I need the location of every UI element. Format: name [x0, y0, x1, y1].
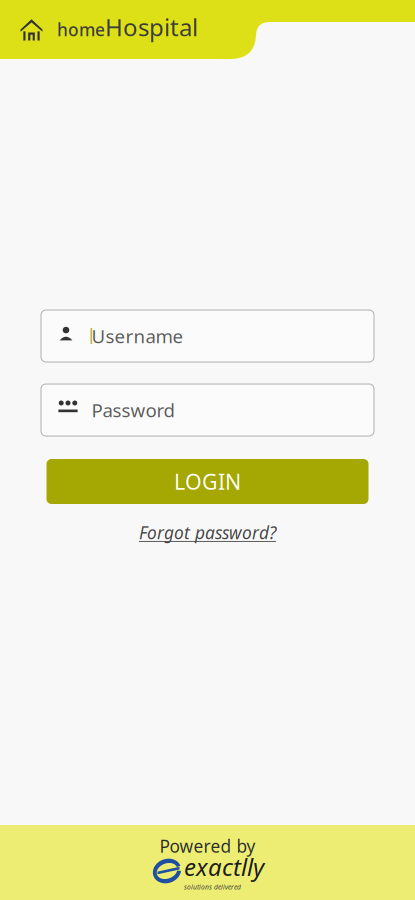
button[interactable]: LOGIN: [46, 459, 368, 504]
button[interactable]: Forgot password?: [139, 521, 276, 544]
staticText: solutions delivered: [184, 882, 241, 891]
staticText: LOGIN: [174, 467, 241, 496]
staticText: Password: [91, 398, 174, 422]
staticText: Hospital: [105, 11, 198, 43]
staticText: exactlly: [184, 851, 264, 882]
button[interactable]: Username: [41, 310, 374, 362]
button[interactable]: Password: [41, 384, 374, 436]
staticText: Forgot password?: [139, 521, 276, 544]
staticText: home: [57, 18, 105, 41]
staticText: Username: [91, 324, 183, 348]
staticText: Powered by: [159, 834, 255, 857]
